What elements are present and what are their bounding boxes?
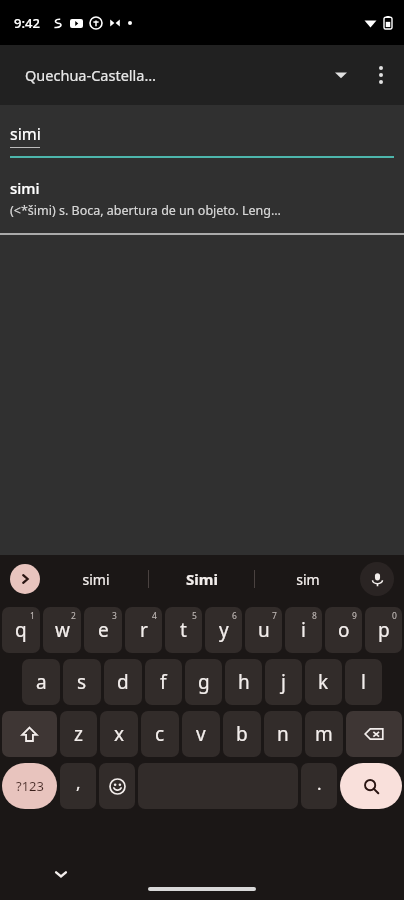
button[interactable]: e	[84, 607, 122, 653]
staticText: l	[361, 669, 366, 695]
button[interactable]: More options	[358, 52, 404, 98]
staticText: simi	[10, 123, 41, 145]
staticText: (<*šimi) s. Boca, abertura de un objeto.…	[10, 202, 281, 219]
button[interactable]: ?123	[2, 763, 57, 809]
button[interactable]: u	[245, 607, 282, 653]
button[interactable]: Search	[340, 763, 402, 809]
staticText: Quechua-Castellano (R.Cerrón-Palo..	[25, 65, 162, 85]
staticText: 8	[312, 610, 317, 622]
button[interactable]: k	[305, 659, 342, 705]
button[interactable]: ,	[60, 763, 96, 809]
staticText: sim	[296, 570, 320, 589]
button[interactable]: c	[141, 711, 179, 757]
staticText: k	[318, 669, 329, 695]
button[interactable]: t	[165, 607, 202, 653]
staticText: q	[15, 617, 27, 643]
staticText: 4	[152, 610, 157, 622]
button[interactable]: l	[345, 659, 382, 705]
staticText: u	[258, 617, 270, 643]
staticText: 9	[352, 610, 357, 622]
staticText: o	[338, 617, 350, 643]
button[interactable]: a	[22, 659, 60, 705]
staticText: 9:42	[14, 14, 40, 32]
staticText: h	[238, 669, 250, 695]
button[interactable]: y	[205, 607, 242, 653]
button[interactable]: o	[325, 607, 362, 653]
button[interactable]: r	[125, 607, 162, 653]
staticText: v	[196, 721, 206, 747]
staticText: 2	[71, 610, 76, 622]
staticText: w	[55, 617, 70, 643]
button[interactable]: x	[100, 711, 138, 757]
button[interactable]: simi	[44, 555, 148, 603]
staticText: ,	[76, 771, 81, 794]
staticText: b	[236, 721, 248, 747]
button[interactable]: sim	[255, 555, 360, 603]
staticText: d	[117, 669, 129, 695]
staticText: .	[317, 772, 322, 795]
button[interactable]: p	[365, 607, 402, 653]
button[interactable]: z	[60, 711, 97, 757]
staticText: 7	[272, 610, 277, 622]
button[interactable]: w	[43, 607, 81, 653]
staticText: c	[155, 721, 165, 747]
button[interactable]: Simi	[149, 555, 254, 603]
button[interactable]: m	[305, 711, 343, 757]
button[interactable]: Voice input	[360, 562, 394, 596]
staticText: 0	[392, 610, 397, 622]
button[interactable]: Emoji	[99, 763, 135, 809]
button[interactable]: j	[265, 659, 302, 705]
button[interactable]: i	[285, 607, 322, 653]
button[interactable]: v	[182, 711, 220, 757]
staticText: y	[219, 617, 229, 643]
staticText: e	[98, 617, 109, 643]
button[interactable]: f	[145, 659, 182, 705]
staticText: t	[180, 617, 187, 643]
staticText: simi	[10, 178, 40, 198]
staticText: n	[277, 721, 289, 747]
staticText: j	[281, 669, 286, 695]
button[interactable]: g	[185, 659, 222, 705]
staticText: f	[160, 669, 167, 695]
staticText: 5	[192, 610, 197, 622]
button[interactable]: s	[63, 659, 101, 705]
button[interactable]: d	[104, 659, 142, 705]
button[interactable]: h	[225, 659, 262, 705]
button[interactable]: q	[2, 607, 40, 653]
staticText: a	[36, 669, 47, 695]
staticText: ?123	[16, 777, 44, 795]
staticText: 6	[232, 610, 237, 622]
staticText: i	[301, 617, 306, 643]
button[interactable]: simi	[0, 176, 404, 221]
staticText: 1	[30, 610, 35, 622]
staticText: simi	[82, 570, 110, 589]
button[interactable]: b	[223, 711, 261, 757]
staticText: p	[378, 617, 390, 643]
button[interactable]: Hide keyboard	[44, 857, 78, 891]
staticText: 3	[112, 610, 117, 622]
staticText: z	[74, 721, 83, 747]
button[interactable]: n	[264, 711, 302, 757]
staticText: s	[77, 669, 87, 695]
staticText: g	[198, 669, 210, 695]
staticText: Simi	[186, 569, 218, 589]
button[interactable]: .	[301, 763, 337, 809]
staticText: m	[315, 721, 333, 747]
button[interactable]: Shift	[2, 711, 57, 757]
button[interactable]: Backspace	[346, 711, 402, 757]
button[interactable]: Expand toolbar	[10, 564, 40, 594]
button[interactable]: Select dictionary	[324, 58, 358, 92]
staticText: r	[140, 617, 148, 643]
staticText: x	[114, 721, 125, 747]
